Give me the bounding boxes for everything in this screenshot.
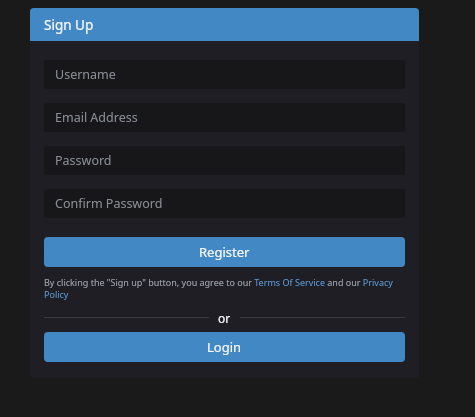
button[interactable]: Register [44,237,405,267]
button[interactable]: By clicking the "Sign up" button, you ag… [44,276,405,301]
staticText: Username [55,66,116,83]
staticText: By clicking the "Sign up" button, you ag… [44,276,405,301]
staticText: Login [207,338,242,356]
staticText: Password [55,152,112,169]
button[interactable]: Sign Up [30,8,419,41]
button[interactable]: Login [44,332,405,362]
staticText: Email Address [55,109,138,126]
staticText: Confirm Password [55,195,163,212]
staticText: Register [199,243,250,261]
button[interactable]: Username [44,60,405,89]
button[interactable]: Confirm Password [44,189,405,218]
button[interactable]: Password [44,146,405,175]
staticText: or [218,310,231,324]
staticText: Sign Up [44,16,94,34]
button[interactable]: Email Address [44,103,405,132]
